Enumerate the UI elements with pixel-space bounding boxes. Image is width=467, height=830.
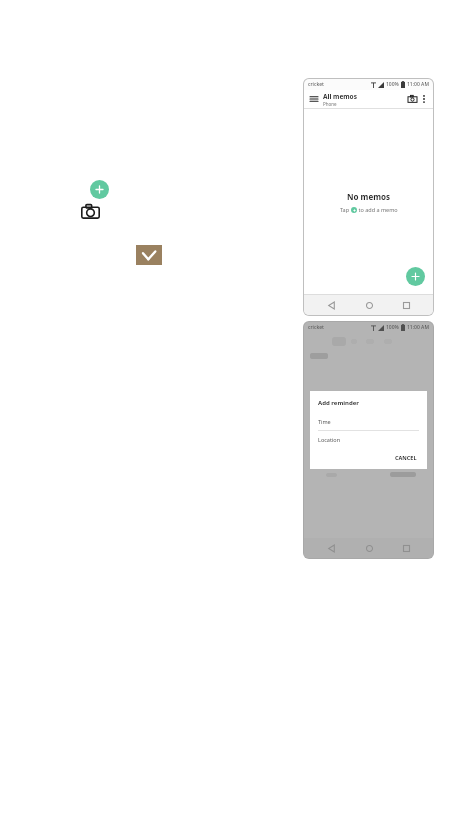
staticText: 100%: [386, 324, 399, 331]
button[interactable]: Back: [320, 295, 342, 315]
button[interactable]: Camera memo: [405, 92, 419, 106]
staticText: 11:00 AM: [407, 81, 429, 88]
button[interactable]: Location: [310, 431, 427, 448]
button[interactable]: Add memo: [406, 267, 425, 286]
button[interactable]: More options: [419, 94, 429, 104]
staticText: Time: [318, 418, 331, 425]
staticText: 11:00 AM: [407, 324, 429, 331]
staticText: Add reminder: [318, 399, 360, 407]
staticText: Phone: [323, 101, 337, 107]
button[interactable]: Recents: [395, 295, 417, 315]
button[interactable]: Home: [358, 295, 380, 315]
button[interactable]: CANCEL: [393, 453, 419, 462]
button[interactable]: Menu: [308, 93, 320, 105]
staticText: to add a memo: [357, 206, 398, 213]
button[interactable]: Recents: [395, 538, 417, 558]
staticText: cricket: [308, 81, 324, 88]
staticText: Location: [318, 436, 341, 443]
button[interactable]: Time: [310, 413, 427, 430]
staticText: Tap: [340, 206, 351, 213]
staticText: No memos: [347, 191, 390, 202]
staticText: 100%: [386, 81, 399, 88]
button[interactable]: Home: [358, 538, 380, 558]
button[interactable]: Done: [136, 245, 162, 265]
button[interactable]: Camera: [79, 200, 101, 222]
button[interactable]: Add: [90, 180, 109, 199]
staticText: cricket: [308, 324, 324, 331]
staticText: CANCEL: [395, 454, 417, 461]
staticText: All memos: [323, 92, 357, 101]
button[interactable]: Back: [320, 538, 342, 558]
